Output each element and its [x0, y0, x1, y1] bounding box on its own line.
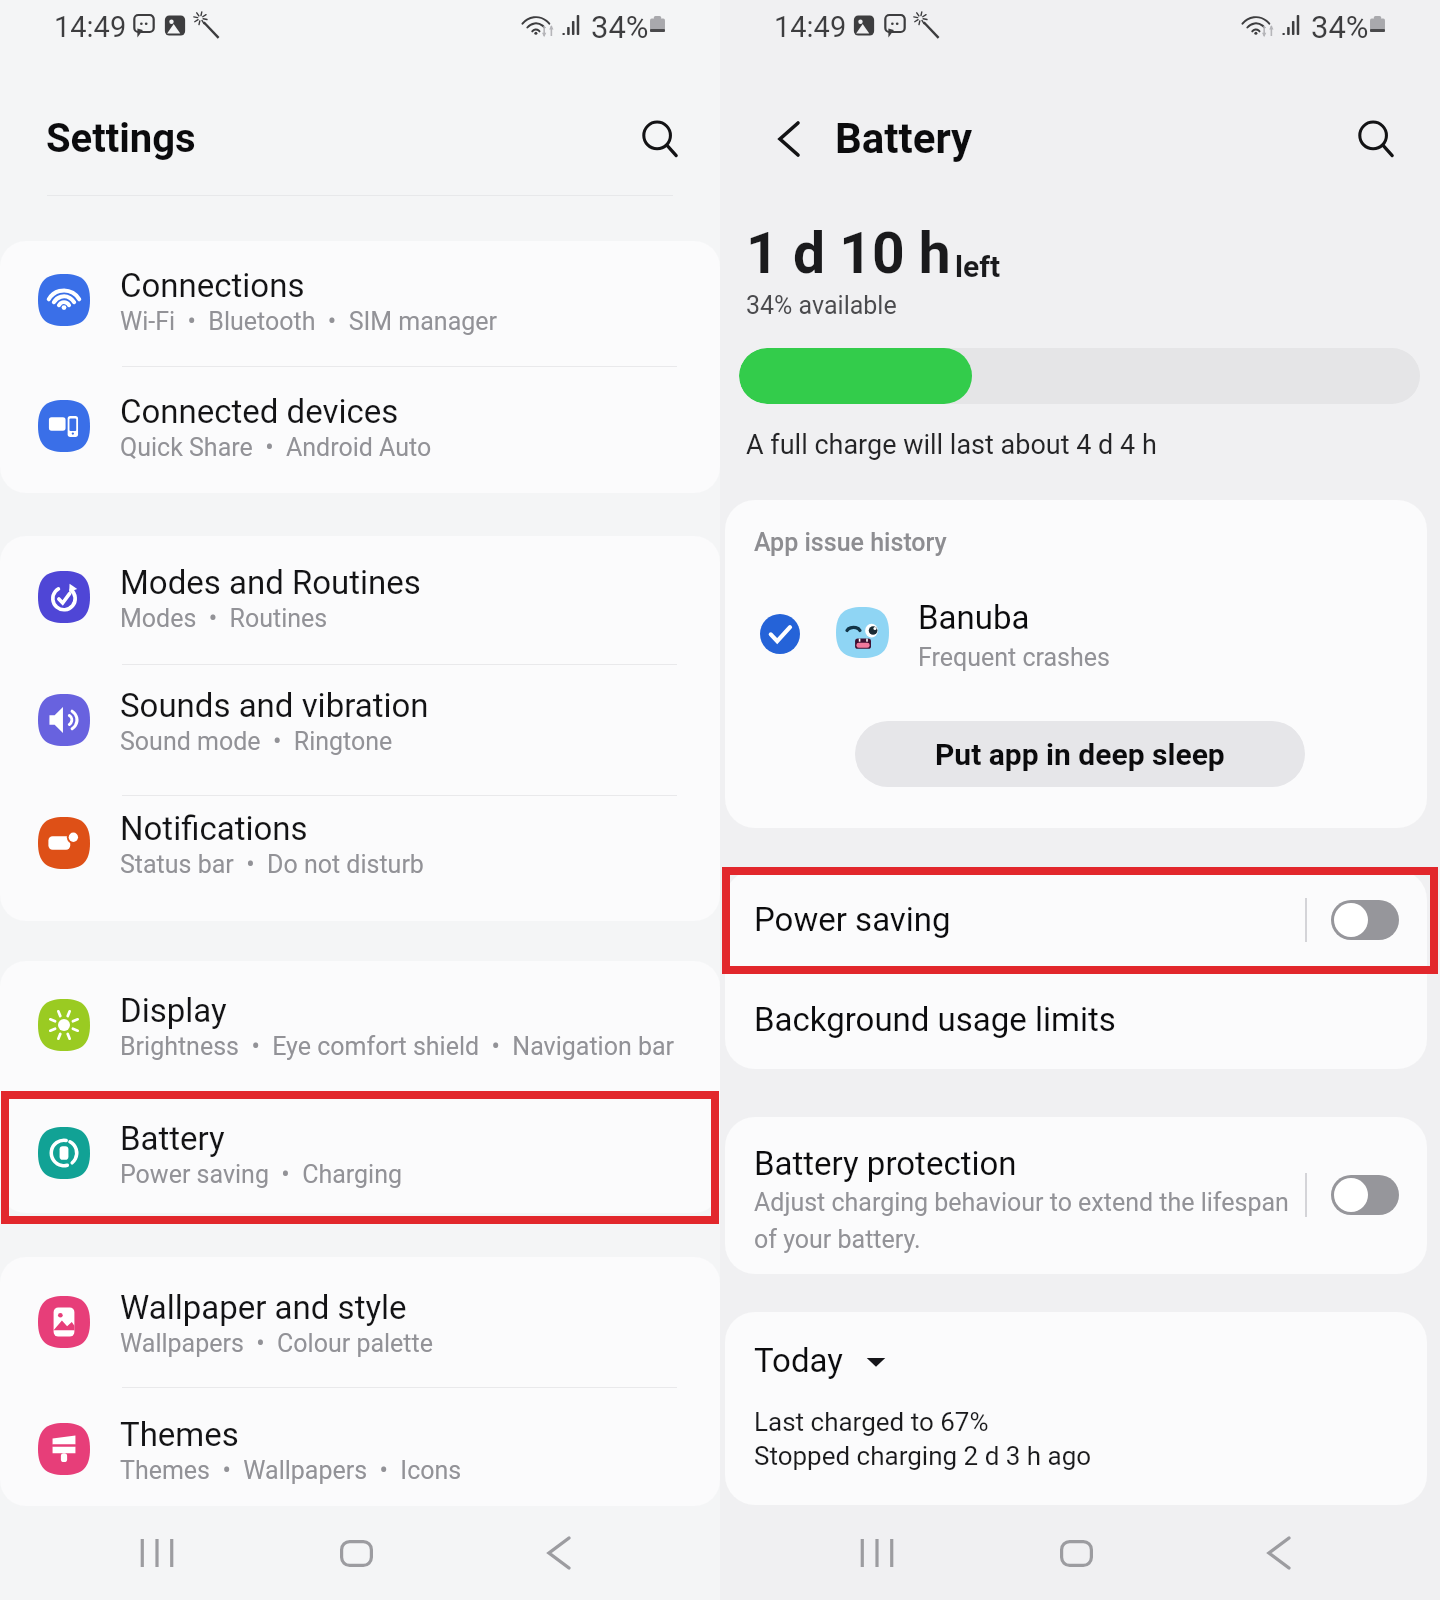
staticText: Modes • Routines [120, 604, 328, 633]
button[interactable]: Search [628, 107, 692, 171]
button[interactable]: Connections [0, 241, 720, 363]
staticText: Modes and Routines [120, 563, 421, 602]
staticText: Last charged to 67% [754, 1407, 989, 1437]
staticText: Today [754, 1341, 843, 1380]
staticText: Sound mode • Ringtone [120, 727, 393, 756]
button[interactable]: Battery [0, 1090, 720, 1213]
staticText: Connected devices [120, 392, 399, 431]
staticText: Settings [46, 115, 196, 162]
staticText: left [955, 249, 1001, 284]
button[interactable]: Battery protection [725, 1117, 1427, 1274]
button[interactable]: Back [1219, 1509, 1339, 1597]
button[interactable]: Notifications [0, 780, 720, 906]
staticText: Wallpapers • Colour palette [120, 1329, 433, 1358]
staticText: 34% [591, 9, 649, 45]
button[interactable]: Today [754, 1341, 887, 1380]
button[interactable]: Wallpaper and style [0, 1259, 720, 1385]
button[interactable]: Put app in deep sleep [855, 721, 1305, 787]
staticText: 14:49 [54, 10, 127, 44]
button[interactable]: Recent apps [97, 1509, 217, 1597]
staticText: Display [120, 991, 227, 1030]
button[interactable]: Toggle off [1331, 1175, 1399, 1215]
staticText: App issue history [754, 528, 947, 557]
staticText: Background usage limits [754, 1000, 1116, 1039]
button[interactable]: Back [499, 1509, 619, 1597]
button[interactable]: Back [757, 107, 821, 171]
button[interactable]: Search [1344, 107, 1408, 171]
button[interactable]: Connected devices [0, 363, 720, 489]
button[interactable]: Themes [0, 1386, 720, 1506]
button[interactable]: Recent apps [817, 1509, 937, 1597]
staticText: Quick Share • Android Auto [120, 433, 432, 462]
button[interactable]: Power saving [725, 870, 1427, 970]
staticText: Put app in deep sleep [935, 737, 1225, 772]
staticText: A full charge will last about 4 d 4 h [746, 429, 1157, 461]
staticText: Adjust charging behaviour to extend the … [754, 1188, 1294, 1254]
staticText: Wi-Fi • Bluetooth • SIM manager [120, 307, 498, 336]
staticText: Battery protection [754, 1144, 1017, 1183]
staticText: Themes [120, 1415, 239, 1454]
staticText: Status bar • Do not disturb [120, 850, 424, 879]
staticText: Sounds and vibration [120, 686, 429, 725]
staticText: 14:49 [774, 10, 847, 44]
staticText: 1 d 10 h [746, 220, 951, 287]
staticText: Wallpaper and style [120, 1288, 407, 1327]
staticText: Brightness • Eye comfort shield • Naviga… [120, 1032, 675, 1061]
staticText: Banuba [918, 598, 1030, 637]
button[interactable]: Display [0, 962, 720, 1088]
staticText: 34% [1311, 9, 1369, 45]
button[interactable]: Background usage limits [725, 970, 1427, 1069]
button[interactable]: Sounds and vibration [0, 657, 720, 783]
staticText: Power saving [754, 900, 951, 939]
staticText: Power saving • Charging [120, 1160, 403, 1189]
staticText: Stopped charging 2 d 3 h ago [754, 1441, 1092, 1471]
staticText: Connections [120, 266, 305, 305]
staticText: Battery [120, 1119, 225, 1158]
staticText: Frequent crashes [918, 643, 1110, 672]
staticText: 34% available [746, 291, 897, 320]
button[interactable]: Modes and Routines [0, 536, 720, 660]
staticText: Notifications [120, 809, 308, 848]
button[interactable]: Home [296, 1509, 416, 1597]
staticText: Battery [835, 114, 973, 163]
staticText: Themes • Wallpapers • Icons [120, 1456, 462, 1485]
button[interactable]: Home [1016, 1509, 1136, 1597]
button[interactable]: Toggle off [1331, 900, 1399, 940]
